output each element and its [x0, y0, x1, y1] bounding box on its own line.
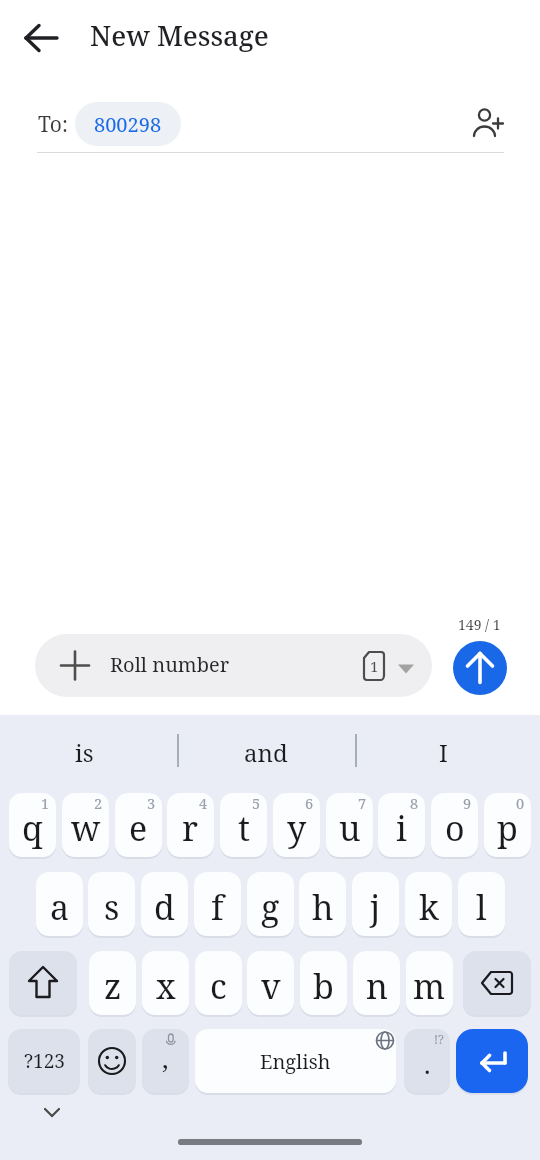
staticText: and	[244, 736, 288, 769]
staticText: d	[154, 884, 175, 930]
staticText: 149 / 1	[458, 615, 501, 634]
button[interactable]: .	[404, 1029, 450, 1093]
button[interactable]: Roll number	[35, 634, 432, 697]
staticText: a	[50, 884, 70, 930]
staticText: e	[129, 805, 148, 851]
button[interactable]: y	[273, 793, 320, 857]
button[interactable]: c	[195, 951, 242, 1015]
staticText: 4	[199, 793, 208, 813]
staticText: l	[476, 884, 487, 930]
button[interactable]: p	[484, 793, 531, 857]
staticText: is	[75, 736, 94, 769]
button[interactable]: u	[326, 793, 373, 857]
button[interactable]: t	[220, 793, 267, 857]
button[interactable]	[463, 951, 531, 1015]
staticText: ,	[162, 1040, 169, 1075]
staticText: 1	[41, 793, 50, 813]
staticText: p	[497, 805, 518, 851]
button[interactable]: d	[141, 872, 188, 936]
staticText: y	[287, 805, 307, 851]
button[interactable]: k	[405, 872, 452, 936]
button[interactable]: is	[0, 712, 169, 792]
staticText: r	[182, 805, 199, 851]
staticText: o	[445, 805, 465, 851]
button[interactable]: s	[88, 872, 135, 936]
button[interactable]: r	[167, 793, 214, 857]
staticText: 0	[516, 793, 525, 813]
button[interactable]: a	[36, 872, 83, 936]
staticText: I	[439, 736, 448, 769]
button[interactable]: English	[195, 1029, 396, 1093]
staticText: 6	[305, 793, 314, 813]
staticText: ?123	[24, 1048, 65, 1074]
button[interactable]: b	[300, 951, 347, 1015]
staticText: f	[211, 884, 224, 930]
staticText: t	[238, 805, 250, 851]
staticText: x	[156, 963, 176, 1009]
button[interactable]	[456, 1029, 528, 1093]
staticText: u	[339, 805, 361, 851]
staticText: s	[104, 884, 120, 930]
button[interactable]: f	[194, 872, 241, 936]
staticText: n	[366, 963, 388, 1009]
button[interactable]: e	[115, 793, 162, 857]
staticText: 9	[463, 793, 472, 813]
staticText: Roll number	[110, 651, 230, 678]
button[interactable]: h	[299, 872, 346, 936]
button[interactable]	[9, 951, 77, 1015]
staticText: 8	[410, 793, 419, 813]
staticText: .	[424, 1046, 431, 1081]
button[interactable]: j	[352, 872, 399, 936]
button[interactable]: and	[177, 712, 355, 792]
staticText: b	[313, 963, 334, 1009]
button[interactable]	[30, 1098, 74, 1132]
button[interactable]: o	[431, 793, 478, 857]
button[interactable]: I	[356, 712, 531, 792]
staticText: 3	[147, 793, 156, 813]
staticText: v	[261, 963, 281, 1009]
button[interactable]: n	[353, 951, 400, 1015]
staticText: m	[413, 963, 446, 1009]
button[interactable]	[16, 22, 64, 54]
staticText: i	[396, 805, 407, 851]
staticText: !?	[434, 1031, 444, 1047]
staticText: New Message	[90, 17, 269, 54]
button[interactable]	[88, 1029, 136, 1093]
button[interactable]: v	[247, 951, 294, 1015]
staticText: 800298	[94, 111, 162, 138]
staticText: q	[22, 805, 43, 851]
button[interactable]: q	[9, 793, 56, 857]
button[interactable]: ,	[142, 1029, 189, 1093]
button[interactable]: w	[62, 793, 109, 857]
button[interactable]	[453, 641, 507, 695]
staticText: k	[419, 884, 439, 930]
button[interactable]: z	[89, 951, 136, 1015]
staticText: c	[210, 963, 227, 1009]
staticText: g	[261, 884, 280, 930]
button[interactable]: 800298	[75, 102, 181, 146]
staticText: 2	[94, 793, 103, 813]
staticText: j	[370, 884, 381, 930]
button[interactable]: i	[378, 793, 425, 857]
staticText: 1	[370, 656, 379, 676]
button[interactable]: g	[247, 872, 294, 936]
staticText: English	[260, 1048, 331, 1075]
button[interactable]: x	[142, 951, 189, 1015]
button[interactable]	[466, 102, 510, 144]
staticText: w	[71, 805, 101, 851]
button[interactable]: ?123	[8, 1029, 80, 1093]
staticText: To:	[38, 110, 68, 139]
button[interactable]: l	[458, 872, 505, 936]
staticText: 7	[358, 793, 367, 813]
staticText: 5	[252, 793, 261, 813]
button[interactable]: m	[406, 951, 453, 1015]
staticText: h	[312, 884, 334, 930]
staticText: z	[104, 963, 122, 1009]
